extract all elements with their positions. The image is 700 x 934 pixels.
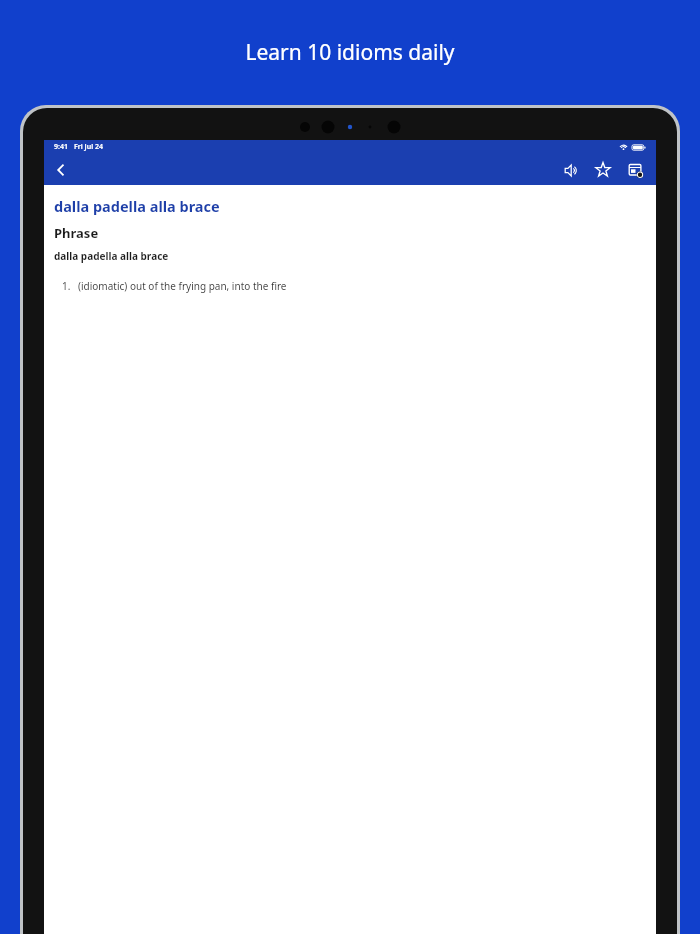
button[interactable]: Back	[48, 157, 74, 183]
button[interactable]: Favorite	[590, 157, 616, 183]
staticText: Phrase	[54, 224, 99, 242]
button[interactable]: Article	[622, 157, 648, 183]
button[interactable]: Listen	[558, 157, 584, 183]
staticText: (idiomatic) out of the frying pan, into …	[78, 279, 287, 293]
staticText: 9:41	[54, 142, 68, 152]
staticText: 1.	[62, 279, 71, 293]
staticText: dalla padella alla brace	[54, 249, 169, 263]
staticText: dalla padella alla brace	[54, 196, 220, 216]
staticText: Fri Jul 24	[74, 142, 104, 152]
staticText: Learn 10 idioms daily	[245, 38, 455, 67]
